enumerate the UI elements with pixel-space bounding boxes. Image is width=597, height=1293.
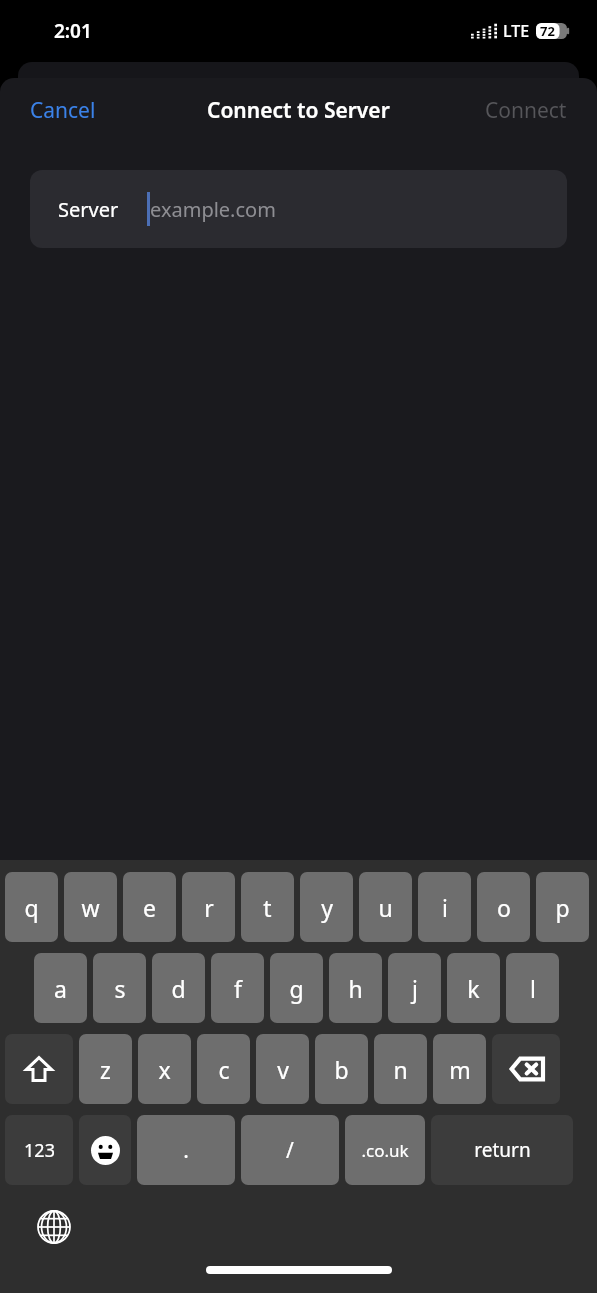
staticText: j [412, 973, 418, 1004]
button[interactable]: a [34, 953, 87, 1023]
staticText: Server [58, 196, 119, 223]
button[interactable]: k [447, 953, 500, 1023]
staticText: / [286, 1136, 294, 1165]
staticText: u [378, 892, 393, 923]
button[interactable]: v [256, 1034, 309, 1104]
staticText: c [218, 1054, 230, 1085]
button[interactable]: e [123, 872, 176, 942]
staticText: d [171, 973, 186, 1004]
button[interactable]: p [536, 872, 589, 942]
staticText: q [24, 892, 39, 923]
staticText: s [114, 973, 126, 1004]
staticText: n [393, 1054, 408, 1085]
button[interactable]: f [211, 953, 264, 1023]
button[interactable]: d [152, 953, 205, 1023]
button[interactable]: w [64, 872, 117, 942]
staticText: v [277, 1054, 289, 1085]
button[interactable]: return [431, 1115, 573, 1185]
staticText: Cancel [30, 96, 96, 125]
staticText: 72 [540, 22, 555, 40]
staticText: y [321, 892, 333, 923]
button[interactable]: m [433, 1034, 486, 1104]
staticText: 2:01 [54, 18, 92, 44]
staticText: LTE [503, 20, 530, 42]
staticText: a [54, 973, 67, 1004]
button[interactable]: o [477, 872, 530, 942]
staticText: t [263, 892, 272, 923]
staticText: p [555, 892, 570, 923]
button[interactable]: g [270, 953, 323, 1023]
staticText: Connect [485, 96, 567, 125]
button[interactable]: h [329, 953, 382, 1023]
button[interactable]: q [5, 872, 58, 942]
staticText: return [474, 1137, 531, 1163]
button[interactable]: Emoji [79, 1115, 131, 1185]
button[interactable]: i [418, 872, 471, 942]
staticText: e [143, 892, 156, 923]
staticText: 123 [24, 1138, 55, 1163]
staticText: m [449, 1054, 471, 1085]
button[interactable]: Connect [455, 88, 597, 133]
button[interactable]: r [182, 872, 235, 942]
staticText: k [467, 973, 480, 1004]
staticText: z [100, 1054, 111, 1085]
button[interactable]: l [506, 953, 559, 1023]
other: Shift [24, 1054, 54, 1084]
button[interactable]: x [138, 1034, 191, 1104]
button[interactable]: c [197, 1034, 250, 1104]
staticText: l [530, 973, 536, 1004]
button[interactable]: . [137, 1115, 235, 1185]
button[interactable]: 123 [5, 1115, 73, 1185]
button[interactable]: b [315, 1034, 368, 1104]
button[interactable]: j [388, 953, 441, 1023]
button[interactable]: Server [30, 170, 567, 248]
staticText: .co.uk [361, 1139, 409, 1162]
button[interactable]: Switch keyboard language [32, 1205, 76, 1249]
button[interactable]: Shift [5, 1034, 73, 1104]
staticText: Connect to Server [207, 96, 390, 125]
staticText: i [442, 892, 448, 923]
staticText: h [348, 973, 363, 1004]
button[interactable]: t [241, 872, 294, 942]
staticText: example.com [150, 196, 276, 223]
button[interactable]: Cancel [0, 88, 126, 133]
button[interactable]: Backspace [492, 1034, 560, 1104]
other: Backspace [509, 1056, 543, 1082]
staticText: r [204, 892, 214, 923]
staticText: w [81, 892, 100, 923]
staticText: o [497, 892, 511, 923]
staticText: . [183, 1136, 189, 1165]
other: Emoji [91, 1136, 120, 1165]
button[interactable]: y [300, 872, 353, 942]
staticText: f [234, 973, 242, 1004]
button[interactable]: .co.uk [345, 1115, 425, 1185]
button[interactable]: u [359, 872, 412, 942]
button[interactable]: n [374, 1034, 427, 1104]
staticText: x [158, 1054, 171, 1085]
staticText: b [334, 1054, 349, 1085]
button[interactable]: / [241, 1115, 339, 1185]
button[interactable]: z [79, 1034, 132, 1104]
staticText: g [289, 973, 304, 1004]
button[interactable]: s [93, 953, 146, 1023]
